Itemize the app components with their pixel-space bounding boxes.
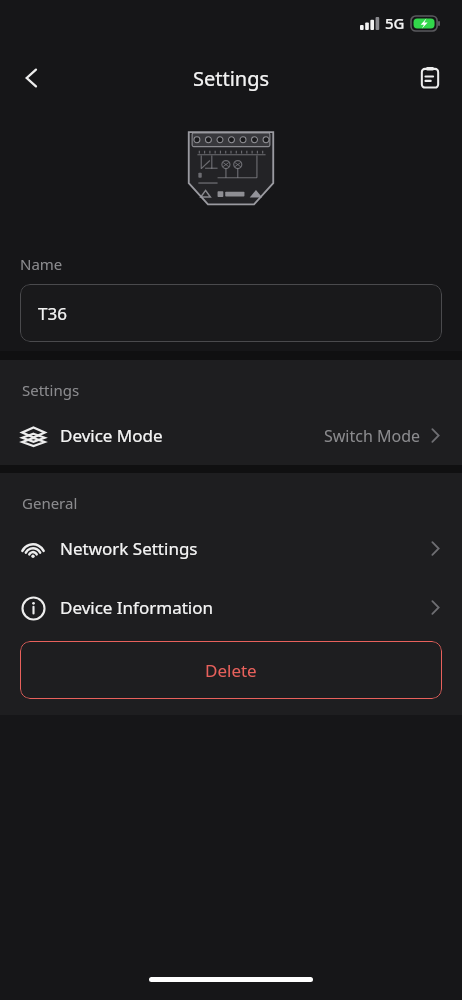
button[interactable]: Device log [406,54,454,102]
staticText: T36 [38,302,67,325]
staticText: General [22,493,78,513]
button[interactable]: T36 [20,284,442,342]
staticText: Device Information [60,596,214,619]
button[interactable]: Device Mode [0,406,462,465]
staticText: Name [20,254,63,274]
staticText: Device Mode [60,424,163,447]
staticText: Delete [205,659,257,682]
staticText: 5G [385,13,405,33]
button[interactable]: Back [8,54,56,102]
button[interactable]: Network Settings [0,519,462,578]
staticText: Switch Mode [324,425,421,447]
staticText: Network Settings [60,537,198,560]
button[interactable]: Delete [20,641,442,699]
staticText: Settings [193,65,270,92]
button[interactable]: Device Information [0,578,462,637]
staticText: Settings [22,380,80,400]
